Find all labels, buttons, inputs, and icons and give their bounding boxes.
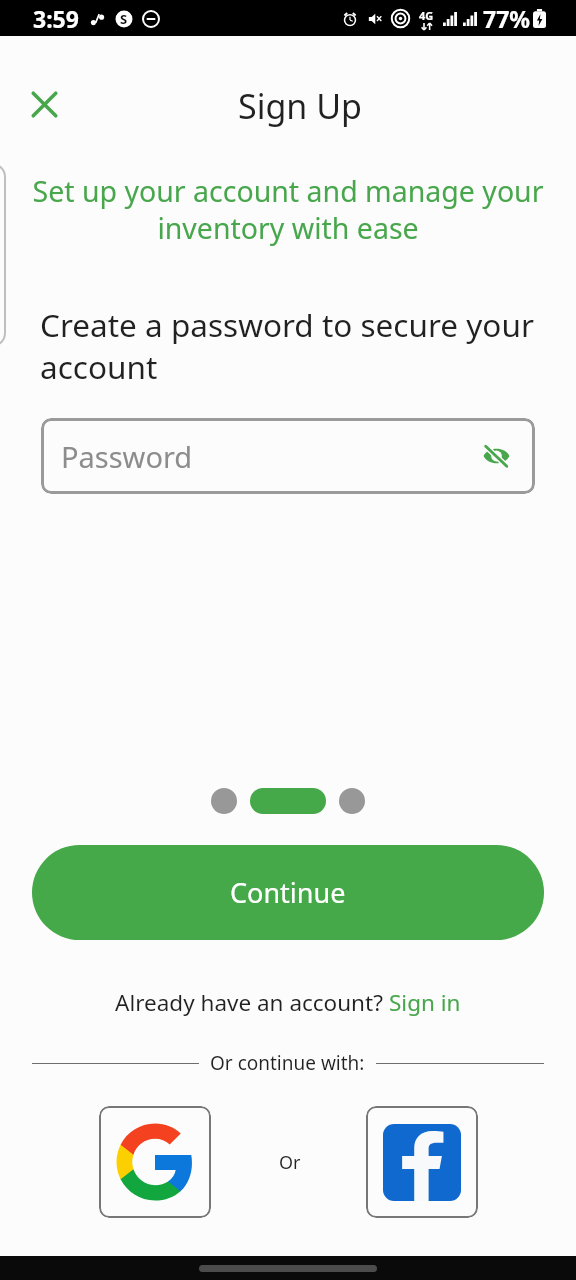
staticText: Sign in [389, 987, 461, 1018]
button[interactable]: Password [41, 418, 535, 494]
button[interactable]: Sign up with Google [99, 1106, 211, 1218]
staticText: Or continue with: [210, 1050, 365, 1076]
button[interactable]: Show password [475, 435, 517, 477]
staticText: Continue [230, 874, 346, 911]
staticText: Password [61, 437, 193, 476]
staticText: Already have an account? [115, 987, 389, 1018]
staticText: Or [279, 1150, 301, 1175]
staticText: 77% [483, 3, 531, 34]
staticText: 3:59 [33, 3, 79, 34]
staticText: S [120, 10, 128, 28]
button[interactable]: Sign in [389, 987, 461, 1018]
staticText: Create a password to secure your account [40, 303, 576, 388]
button[interactable]: Sign up with Facebook [366, 1106, 478, 1218]
staticText: Sign Up [12, 83, 576, 129]
button[interactable]: Continue [32, 845, 544, 940]
staticText: Set up your account and manage your inve… [0, 172, 576, 247]
button[interactable]: Close [20, 80, 68, 128]
staticText: 4G [419, 8, 434, 23]
